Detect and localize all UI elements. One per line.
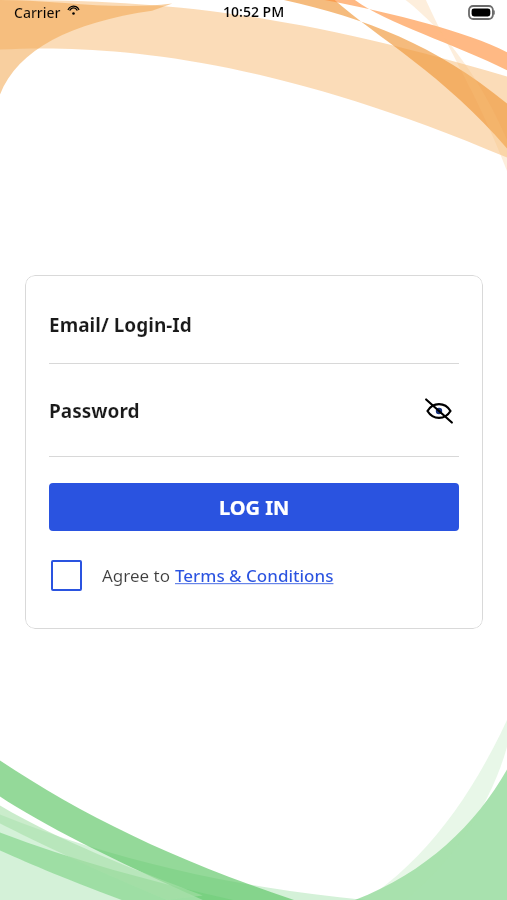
staticText: Password [49, 398, 140, 424]
button[interactable]: Terms & Conditions [175, 564, 334, 587]
staticText: Carrier [14, 3, 61, 22]
staticText: Agree to [102, 564, 175, 587]
staticText: LOG IN [219, 494, 290, 521]
button[interactable]: Email/ Login-Id [25, 275, 483, 363]
button[interactable]: Password [25, 364, 483, 456]
button[interactable]: Agree to Terms and Conditions [49, 558, 83, 592]
staticText: Email/ Login-Id [49, 312, 192, 338]
staticText: 10:52 PM [223, 2, 285, 21]
button[interactable]: LOG IN [49, 483, 459, 531]
staticText: Terms & Conditions [175, 564, 334, 587]
button[interactable]: Show password [419, 391, 459, 431]
